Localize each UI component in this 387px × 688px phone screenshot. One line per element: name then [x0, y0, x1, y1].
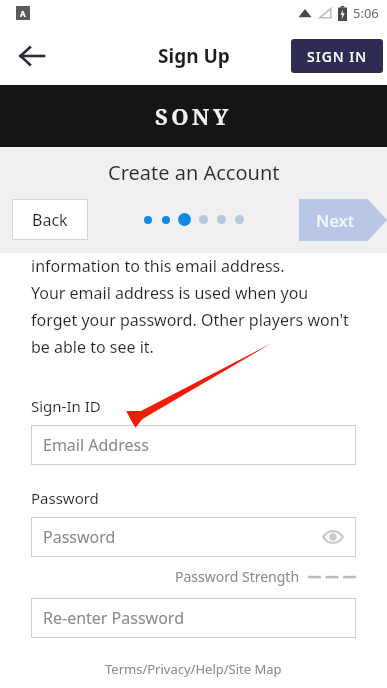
staticText: Your email address is used when you — [31, 282, 309, 304]
staticText: Back — [32, 209, 68, 231]
button[interactable] — [199, 215, 208, 224]
button[interactable]: SIGN IN — [291, 39, 383, 73]
staticText: SIGN IN — [307, 47, 368, 66]
button[interactable]: Back — [12, 199, 88, 240]
staticText: Email Address — [43, 434, 149, 456]
staticText: Terms/Privacy/Help/Site Map — [105, 660, 282, 678]
staticText: information to this email address. — [31, 255, 285, 277]
button[interactable] — [162, 216, 170, 224]
button[interactable] — [235, 215, 244, 224]
button[interactable]: Next — [299, 199, 387, 241]
button[interactable]: Re-enter Password — [31, 598, 356, 638]
staticText: Sign-In ID — [31, 396, 101, 416]
staticText: SONY — [155, 101, 232, 131]
staticText: Password Strength — [175, 567, 300, 586]
staticText: forget your password. Other players won'… — [31, 309, 349, 331]
staticText: Password — [31, 488, 99, 508]
staticText: A — [20, 8, 26, 19]
staticText: Password — [43, 526, 116, 548]
other: Show password — [322, 526, 344, 548]
button[interactable] — [178, 213, 191, 226]
staticText: be able to see it. — [31, 336, 154, 358]
staticText: Sign Up — [158, 43, 230, 69]
staticText: Next — [316, 209, 355, 232]
button[interactable]: Terms/Privacy/Help/Site Map — [105, 660, 282, 678]
button[interactable]: Back — [10, 34, 54, 78]
button[interactable] — [144, 216, 152, 224]
button[interactable]: Email Address — [31, 425, 356, 465]
staticText: Re-enter Password — [43, 607, 184, 629]
staticText: 5:06 — [353, 4, 379, 22]
staticText: Create an Account — [108, 159, 280, 186]
button[interactable]: Password — [31, 517, 356, 557]
button[interactable] — [217, 215, 226, 224]
